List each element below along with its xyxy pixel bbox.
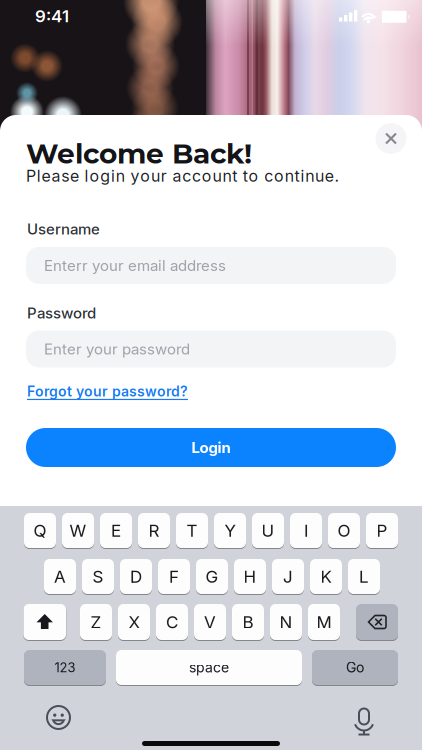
staticText: I (304, 520, 308, 541)
button[interactable]: Dictate (349, 707, 379, 737)
button[interactable]: L (348, 559, 380, 594)
staticText: Enter your password (44, 340, 190, 358)
staticText: W (69, 520, 86, 541)
button[interactable]: S (82, 559, 114, 594)
button[interactable]: K (310, 559, 342, 594)
button[interactable]: Login (26, 428, 396, 467)
button[interactable]: B (232, 604, 264, 640)
button[interactable]: P (366, 513, 398, 548)
staticText: N (279, 612, 292, 632)
staticText: C (166, 612, 178, 632)
button[interactable]: 123 (24, 650, 106, 685)
button[interactable]: Q (24, 513, 56, 548)
button[interactable]: A (44, 559, 76, 594)
staticText: V (204, 612, 216, 632)
staticText: Y (224, 520, 235, 541)
staticText: 9:41 (35, 6, 69, 26)
staticText: Password (27, 304, 96, 322)
staticText: 123 (54, 660, 75, 675)
staticText: P (376, 520, 387, 541)
button[interactable]: N (270, 604, 302, 640)
staticText: M (316, 612, 331, 632)
button[interactable]: X (118, 604, 150, 640)
button[interactable]: Shift (23, 604, 66, 640)
button[interactable]: Go (312, 650, 398, 685)
staticText: Login (191, 439, 230, 456)
button[interactable]: U (252, 513, 284, 548)
button[interactable]: C (156, 604, 188, 640)
staticText: F (169, 566, 179, 587)
staticText: G (205, 566, 218, 587)
staticText: T (186, 520, 197, 541)
staticText: space (189, 659, 229, 676)
button[interactable]: F (158, 559, 190, 594)
staticText: Q (33, 520, 46, 541)
button[interactable]: E (100, 513, 132, 548)
button[interactable]: Z (80, 604, 112, 640)
button[interactable]: R (138, 513, 170, 548)
staticText: H (243, 566, 256, 587)
button[interactable]: T (176, 513, 208, 548)
button[interactable]: Delete (356, 604, 398, 640)
staticText: K (320, 566, 331, 587)
staticText: X (128, 612, 139, 632)
button[interactable]: O (328, 513, 360, 548)
staticText: E (111, 520, 121, 541)
staticText: S (92, 566, 103, 587)
button[interactable]: Emoji (43, 702, 74, 733)
button[interactable]: Y (214, 513, 246, 548)
staticText: Welcome Back! (26, 136, 252, 170)
button[interactable]: Forgot your password? (27, 381, 188, 401)
button[interactable]: Enter your password (26, 330, 396, 367)
staticText: Go (346, 659, 364, 676)
staticText: D (130, 566, 142, 587)
staticText: Please login your account to continue. (26, 167, 339, 185)
button[interactable]: W (62, 513, 94, 548)
staticText: Username (27, 220, 100, 238)
staticText: U (261, 520, 274, 541)
staticText: L (359, 566, 369, 587)
button[interactable]: V (194, 604, 226, 640)
button[interactable]: J (272, 559, 304, 594)
button[interactable]: H (234, 559, 266, 594)
staticText: R (148, 520, 159, 541)
button[interactable]: Close (375, 123, 406, 154)
staticText: Z (90, 612, 101, 632)
button[interactable]: G (196, 559, 228, 594)
staticText: J (283, 566, 293, 587)
button[interactable]: M (308, 604, 340, 640)
staticText: A (54, 566, 66, 587)
button[interactable]: I (290, 513, 322, 548)
staticText: O (337, 520, 350, 541)
staticText: Forgot your password? (27, 383, 188, 400)
button[interactable]: space (116, 650, 302, 685)
staticText: Enterr your email address (44, 257, 226, 274)
staticText: B (242, 612, 253, 632)
button[interactable]: D (120, 559, 152, 594)
button[interactable]: Enterr your email address (26, 247, 396, 284)
